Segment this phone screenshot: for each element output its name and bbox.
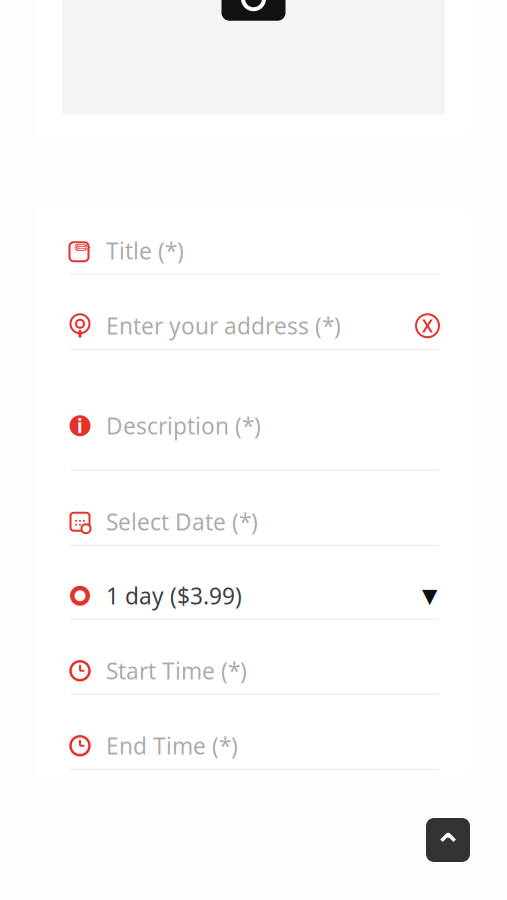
button[interactable]: End Time (*) (68, 723, 439, 770)
staticText: ✏ (74, 236, 91, 259)
staticText: Title (*) (106, 236, 184, 266)
button[interactable]: ✏ (68, 228, 439, 275)
staticText: Enter your address (*) (106, 311, 341, 341)
staticText: Select Date (*) (106, 507, 258, 537)
staticText: Description (*) (106, 411, 261, 441)
button[interactable]: Start Time (*) (68, 648, 439, 695)
button[interactable]: Scroll to top (426, 818, 470, 862)
staticText: ⌃ (433, 826, 462, 866)
staticText: i (77, 413, 83, 438)
staticText: 1 day ($3.99) (106, 581, 242, 611)
staticText: X (422, 314, 433, 337)
staticText: End Time (*) (106, 731, 238, 761)
staticText: ▼ (422, 584, 437, 607)
button[interactable]: 1 day ($3.99) (68, 573, 439, 620)
staticText: Start Time (*) (106, 656, 247, 686)
button[interactable]: Select Date (*) (68, 499, 439, 546)
button[interactable]: Enter your address (*) (68, 303, 439, 350)
button[interactable]: i (68, 382, 439, 471)
button[interactable]: Clear address (416, 314, 439, 337)
